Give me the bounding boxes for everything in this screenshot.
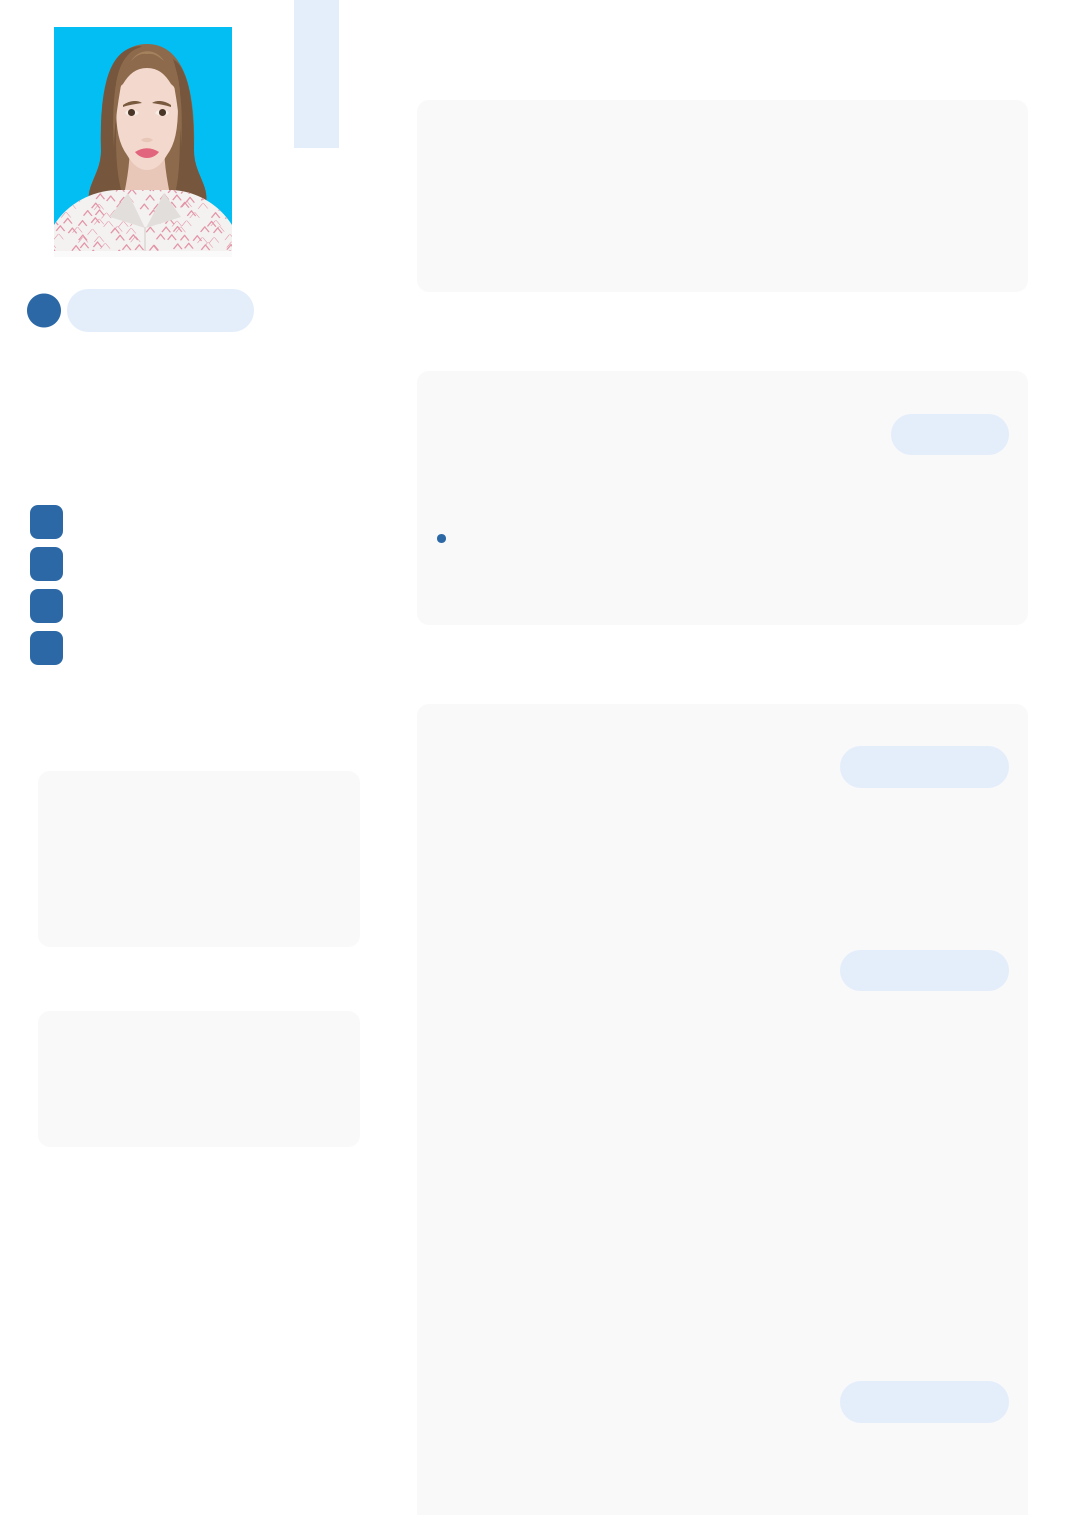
button[interactable]: Name [27, 289, 254, 332]
button[interactable]: Location [30, 589, 63, 623]
button[interactable]: Email [30, 547, 63, 581]
button[interactable]: Website [30, 631, 63, 665]
button[interactable]: Phone [30, 505, 63, 539]
